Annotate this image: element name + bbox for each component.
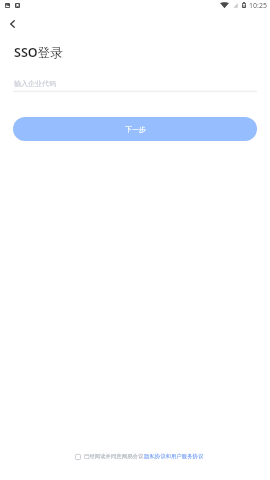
button[interactable]: 隐私协议和用户服务协议 [144, 453, 204, 460]
staticText: 下一步 [125, 125, 146, 134]
staticText: 已经阅读并同意网易会议 [84, 453, 144, 460]
button[interactable]: 同意协议 [75, 454, 81, 460]
staticText: 输入企业代码 [14, 79, 56, 88]
staticText: 10:25 [249, 1, 267, 11]
button[interactable]: 输入企业代码 [13, 74, 257, 94]
button[interactable]: Back [1, 14, 21, 34]
staticText: SSO登录 [14, 44, 63, 61]
button[interactable]: 下一步 [13, 117, 257, 141]
